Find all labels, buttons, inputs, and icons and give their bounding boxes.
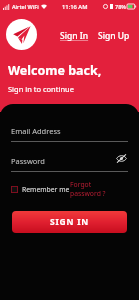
staticText: Sign Up: [98, 30, 130, 42]
staticText: Welcome back,: [8, 62, 102, 79]
button[interactable]: Email Address: [11, 126, 128, 142]
staticText: Sign in to continue: [8, 84, 74, 94]
staticText: Sign In: [60, 30, 89, 42]
staticText: Forgot password ?: [70, 180, 128, 198]
staticText: Password: [11, 156, 45, 166]
staticText: Email Address: [11, 126, 61, 136]
staticText: 11:16 AM: [62, 3, 88, 11]
staticText: 78%: [115, 3, 126, 10]
staticText: Remember me: [22, 185, 70, 194]
button[interactable]: Sign Up: [95, 28, 133, 44]
button[interactable]: SIGN IN: [12, 211, 127, 233]
button[interactable]: Sign In: [57, 28, 92, 44]
button[interactable]: Show password: [115, 152, 128, 165]
staticText: Airtel WiFi: [12, 3, 39, 10]
button[interactable]: Remember me: [11, 185, 70, 194]
staticText: SIGN IN: [50, 216, 90, 228]
button[interactable]: Password: [11, 156, 128, 172]
button[interactable]: Forgot password ?: [70, 180, 128, 198]
